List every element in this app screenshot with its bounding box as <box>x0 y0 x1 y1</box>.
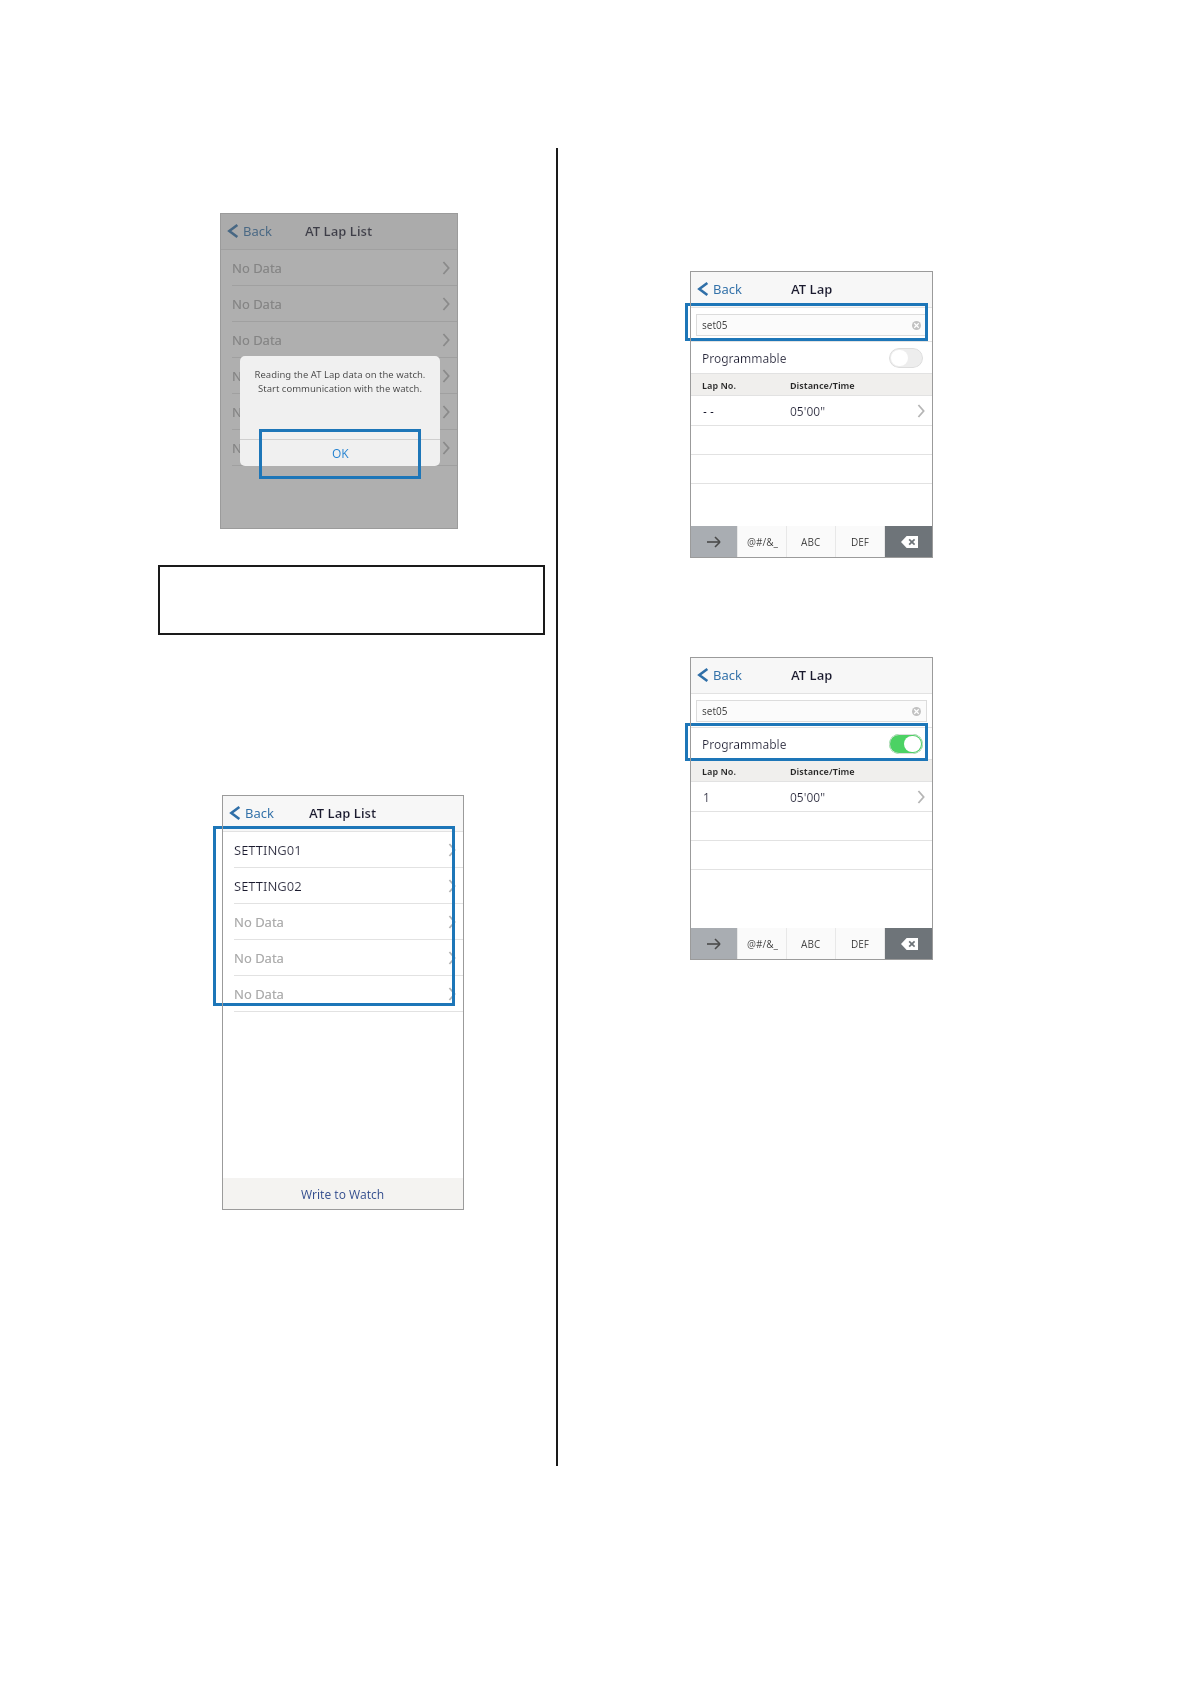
staticText: AT Lap List <box>309 804 377 822</box>
button[interactable]: No Data <box>220 286 458 322</box>
button[interactable]: ABC <box>787 526 835 558</box>
button[interactable]: Next <box>690 526 737 558</box>
staticText: ABC <box>801 535 821 549</box>
button[interactable]: Back <box>228 222 272 240</box>
staticText: @#/&_ <box>747 937 778 951</box>
staticText: 05'00" <box>790 789 826 805</box>
button[interactable]: Backspace <box>885 526 933 558</box>
staticText: AT Lap <box>791 666 833 684</box>
button[interactable]: set05 <box>696 314 927 336</box>
button[interactable]: Next <box>690 928 737 960</box>
button[interactable]: set05 <box>696 700 927 722</box>
staticText: AT Lap <box>791 280 833 298</box>
staticText: No Data <box>232 259 282 277</box>
staticText: Programmable <box>702 350 787 366</box>
button[interactable]: Programmable <box>690 728 933 760</box>
button[interactable]: Write to Watch <box>222 1178 464 1210</box>
staticText: Programmable <box>702 736 787 752</box>
button[interactable]: SETTING02 <box>222 868 464 904</box>
staticText: No Data <box>232 295 282 313</box>
staticText: set05 <box>702 704 728 718</box>
staticText: No Data <box>234 985 284 1003</box>
staticText: AT Lap List <box>305 222 373 240</box>
button[interactable]: No Data <box>220 430 458 466</box>
staticText: No Data <box>234 913 284 931</box>
staticText: ABC <box>801 937 821 951</box>
staticText: Back <box>713 666 742 684</box>
button[interactable]: OK <box>240 440 440 466</box>
button[interactable]: @#/&_ <box>738 526 786 558</box>
button[interactable]: DEF <box>836 928 884 960</box>
button[interactable]: No Data <box>220 358 458 394</box>
staticText: Back <box>243 222 272 240</box>
button[interactable]: Programmable <box>690 342 933 374</box>
staticText: No Data <box>234 949 284 967</box>
button[interactable]: SETTING01 <box>222 832 464 868</box>
staticText: DEF <box>851 535 870 549</box>
button[interactable]: No Data <box>222 904 464 940</box>
button[interactable]: - - <box>690 396 933 426</box>
staticText: Write to Watch <box>301 1186 385 1202</box>
button[interactable]: 1 <box>690 782 933 812</box>
staticText: Start communication with the watch. <box>248 382 432 395</box>
staticText: No Data <box>232 367 282 385</box>
button[interactable]: No Data <box>220 394 458 430</box>
button[interactable]: No Data <box>222 940 464 976</box>
staticText: SETTING02 <box>234 877 302 895</box>
button[interactable]: No Data <box>220 250 458 286</box>
staticText: 1 <box>703 789 710 805</box>
button[interactable]: @#/&_ <box>738 928 786 960</box>
staticText: Reading the AT Lap data on the watch. <box>248 368 432 381</box>
staticText: Back <box>713 280 742 298</box>
button[interactable]: No Data <box>220 322 458 358</box>
button[interactable]: Backspace <box>885 928 933 960</box>
staticText: OK <box>332 445 349 461</box>
staticText: Distance/Time <box>790 765 855 777</box>
button[interactable]: No Data <box>222 976 464 1012</box>
staticText: set05 <box>702 318 728 332</box>
button[interactable]: Back <box>698 666 742 684</box>
button[interactable]: DEF <box>836 526 884 558</box>
staticText: @#/&_ <box>747 535 778 549</box>
staticText: 05'00" <box>790 403 826 419</box>
staticText: No Data <box>232 439 282 457</box>
staticText: No Data <box>232 403 282 421</box>
staticText: Distance/Time <box>790 379 855 391</box>
staticText: Back <box>245 804 274 822</box>
button[interactable]: Back <box>698 280 742 298</box>
staticText: SETTING01 <box>234 841 302 859</box>
button[interactable]: Back <box>230 804 274 822</box>
staticText: - - <box>703 403 714 419</box>
staticText: DEF <box>851 937 870 951</box>
staticText: Lap No. <box>702 379 736 391</box>
staticText: Lap No. <box>702 765 736 777</box>
staticText: No Data <box>232 331 282 349</box>
button[interactable]: ABC <box>787 928 835 960</box>
